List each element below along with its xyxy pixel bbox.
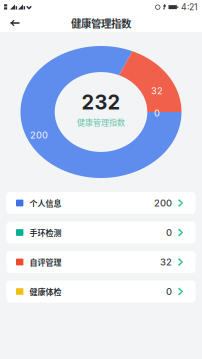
staticText: 健康体检	[29, 286, 61, 297]
staticText: 手环检测	[29, 227, 61, 238]
staticText: 0	[166, 227, 172, 238]
button[interactable]: 健康体检	[6, 280, 195, 302]
staticText: 32	[160, 256, 172, 268]
staticText: 自评管理	[29, 256, 61, 268]
staticText: 4:21	[181, 2, 198, 12]
staticText: 232	[81, 90, 120, 114]
staticText: 200	[30, 129, 48, 141]
staticText: 0	[166, 286, 172, 297]
button[interactable]: Back	[0, 14, 27, 32]
button[interactable]: 自评管理	[6, 251, 195, 273]
button[interactable]: 个人信息	[6, 192, 195, 214]
staticText: 0	[154, 107, 160, 119]
staticText: 健康管理指数	[71, 15, 131, 31]
staticText: 个人信息	[29, 197, 61, 209]
button[interactable]: 手环检测	[6, 221, 195, 243]
staticText: 健康管理指数	[77, 116, 125, 128]
staticText: 200	[154, 197, 172, 209]
staticText: 32	[151, 85, 163, 96]
